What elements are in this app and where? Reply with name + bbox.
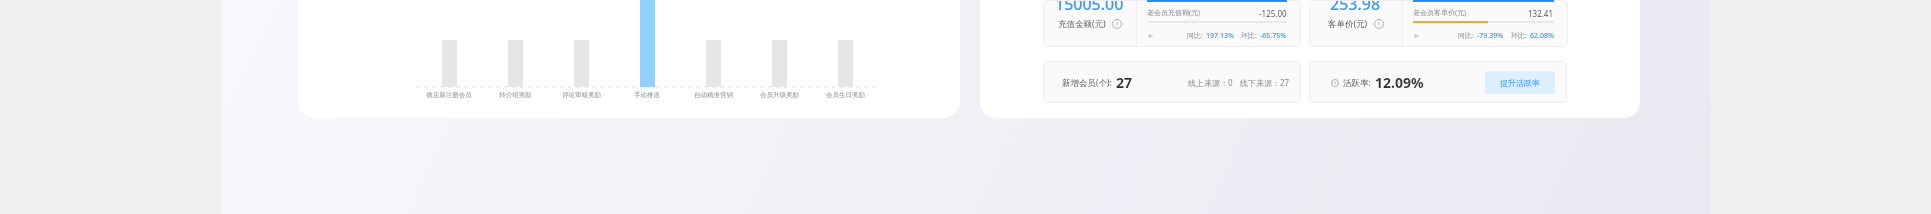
button[interactable]: 15005.00: [1043, 0, 1301, 47]
button[interactable]: 提升活跃率: [1485, 71, 1555, 94]
staticText: 老会员充值额(元): [1147, 8, 1201, 18]
staticText: 充值金额(元): [1058, 18, 1106, 30]
staticText: 同比:: [1458, 31, 1474, 41]
staticText: 15005.00: [1055, 0, 1124, 15]
staticText: 提升活跃率: [1500, 78, 1540, 88]
staticText: 会员升级奖励: [760, 91, 799, 99]
staticText: 会员生日奖励: [826, 91, 865, 99]
staticText: 环比:: [1511, 31, 1527, 41]
button[interactable]: 253.98: [1309, 0, 1568, 47]
staticText: 27: [1116, 73, 1133, 92]
staticText: 线下来源：27: [1240, 77, 1290, 88]
other: More info: [1112, 19, 1122, 29]
staticText: 客单价(元): [1328, 18, 1368, 30]
staticText: 环比:: [1241, 31, 1257, 41]
staticText: 新增会员(个):: [1062, 77, 1112, 89]
staticText: 同比:: [1187, 31, 1203, 41]
button[interactable]: 新增会员(个):: [1043, 61, 1301, 103]
staticText: -79.39%: [1477, 31, 1504, 41]
button[interactable]: More info: [1309, 61, 1567, 103]
staticText: 手动推送: [634, 91, 660, 99]
staticText: -65.75%: [1260, 31, 1287, 41]
staticText: 62.08%: [1530, 31, 1554, 41]
staticText: 自动精准营销: [694, 91, 733, 99]
staticText: 转介绍奖励: [499, 91, 532, 99]
staticText: 132.41: [1528, 8, 1554, 19]
other: More info: [1331, 79, 1339, 87]
staticText: 老会员客单价(元): [1413, 8, 1467, 18]
staticText: 线上来源：0: [1188, 77, 1233, 88]
staticText: 微店新注册会员: [426, 91, 472, 99]
staticText: 253.98: [1330, 0, 1381, 15]
staticText: 12.09%: [1375, 73, 1424, 92]
staticText: 197.13%: [1206, 31, 1234, 41]
staticText: 活跃率:: [1343, 77, 1371, 89]
other: More info: [1374, 19, 1384, 29]
staticText: 评论审核奖励: [562, 91, 601, 99]
staticText: -125.00: [1259, 8, 1287, 19]
